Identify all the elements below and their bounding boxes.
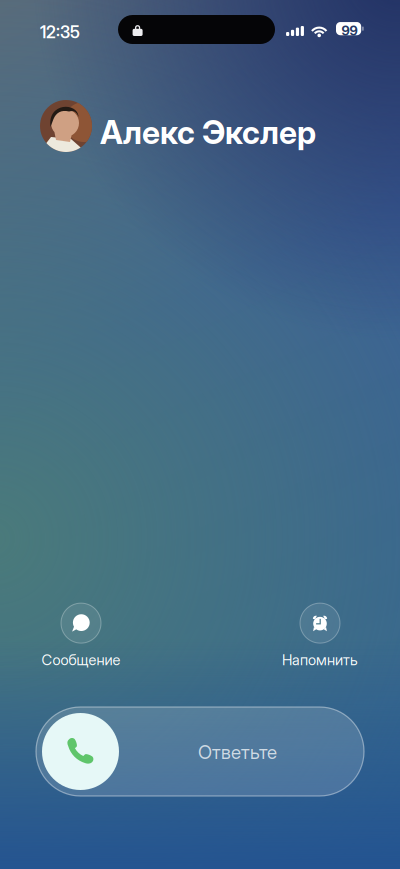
button[interactable]: Ответьте	[36, 707, 364, 796]
staticText: Напомнить	[282, 651, 358, 669]
button[interactable]: Напомнить	[241, 604, 399, 668]
staticText: Сообщение	[41, 651, 120, 669]
button[interactable]: Сообщение	[2, 604, 160, 668]
staticText: Алекс Экслер	[100, 113, 316, 152]
staticText: 12:35	[40, 22, 80, 42]
staticText: Ответьте	[198, 741, 277, 764]
staticText: 99	[341, 23, 357, 39]
